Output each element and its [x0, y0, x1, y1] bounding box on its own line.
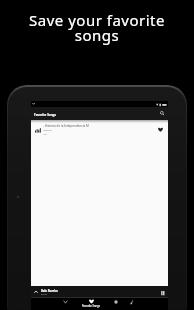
button[interactable]: Favorite Songs: [31, 107, 168, 120]
staticText: 1:05: [43, 133, 47, 136]
staticText: - Historia de la Independencia M: [43, 124, 89, 128]
staticText: Favorite Songs: [34, 113, 57, 117]
button[interactable]: Favorite Songs: [80, 299, 102, 310]
button[interactable]: [110, 299, 121, 309]
staticText: Save your favorite songs: [0, 10, 194, 46]
button[interactable]: [158, 127, 163, 132]
button[interactable]: [161, 291, 165, 295]
staticText: Bala Rumba: [41, 289, 58, 293]
button[interactable]: [126, 299, 137, 309]
button[interactable]: [160, 111, 165, 116]
button[interactable]: [60, 299, 71, 309]
staticText: Favorite Songs: [82, 304, 100, 308]
staticText: Banda: [41, 293, 48, 296]
staticText: Mexicana: [43, 129, 52, 132]
button[interactable]: Bala Rumba: [31, 286, 168, 297]
button[interactable]: - Historia de la Independencia M: [31, 122, 168, 137]
